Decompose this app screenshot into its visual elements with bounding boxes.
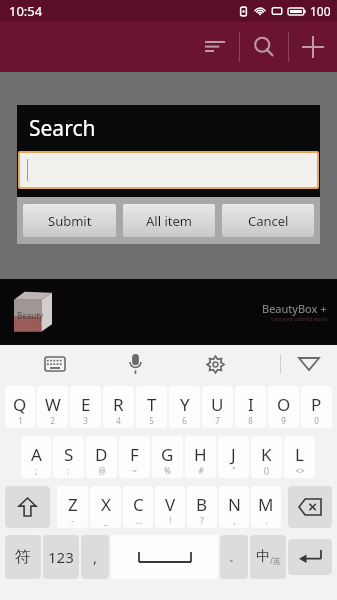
staticText: Search: [29, 114, 96, 143]
staticText: ": [232, 465, 236, 476]
button[interactable]: Enter: [288, 539, 332, 575]
staticText: C: [133, 493, 144, 516]
staticText: turn your colorful world: [271, 316, 327, 323]
button[interactable]: U: [202, 386, 233, 428]
button[interactable]: V: [155, 486, 185, 528]
staticText: 5: [149, 415, 154, 426]
staticText: I: [248, 393, 254, 416]
staticText: U: [211, 393, 224, 416]
button[interactable]: All item: [123, 204, 215, 237]
button[interactable]: T: [136, 386, 167, 428]
staticText: Q: [13, 393, 27, 416]
button[interactable]: S: [53, 436, 84, 478]
button[interactable]: L: [284, 436, 315, 478]
button[interactable]: Search: [240, 22, 288, 72]
staticText: F: [130, 443, 139, 466]
staticText: ?: [200, 515, 204, 526]
button[interactable]: D: [86, 436, 117, 478]
button[interactable]: 符: [5, 535, 41, 579]
button[interactable]: X: [90, 486, 121, 528]
staticText: 3: [83, 415, 88, 426]
staticText: 10:54: [9, 2, 43, 20]
button[interactable]: Z: [57, 486, 88, 528]
button[interactable]: ,: [81, 535, 109, 579]
button[interactable]: M: [251, 486, 281, 528]
button[interactable]: Keyboard layout: [38, 347, 72, 381]
button[interactable]: P: [301, 386, 332, 428]
staticText: 1: [18, 415, 23, 426]
staticText: 4: [116, 415, 121, 426]
button[interactable]: J: [218, 436, 249, 478]
staticText: ,: [93, 547, 98, 567]
button[interactable]: A: [21, 436, 51, 478]
button[interactable]: I: [235, 386, 266, 428]
button[interactable]: Space: [111, 535, 218, 579]
button[interactable]: Sort: [191, 22, 239, 72]
staticText: 。: [229, 550, 240, 564]
staticText: 9: [281, 415, 286, 426]
staticText: ~: [132, 465, 137, 476]
button[interactable]: F: [119, 436, 150, 478]
staticText: W: [45, 393, 61, 416]
staticText: N: [228, 493, 241, 516]
staticText: K: [261, 443, 272, 466]
staticText: ;: [35, 465, 38, 476]
button[interactable]: E: [70, 386, 101, 428]
button[interactable]: Voice input: [118, 347, 152, 381]
button[interactable]: Cancel: [222, 204, 314, 237]
button[interactable]: Submit: [23, 204, 116, 237]
staticText: O: [277, 393, 291, 416]
staticText: P: [311, 393, 322, 416]
button[interactable]: G: [152, 436, 183, 478]
staticText: (): [264, 465, 269, 476]
button[interactable]: Shift: [5, 486, 50, 528]
button[interactable]: Q: [5, 386, 35, 428]
button[interactable]: 。: [220, 535, 248, 579]
staticText: 0: [314, 415, 319, 426]
button[interactable]: N: [219, 486, 249, 528]
staticText: H: [194, 443, 207, 466]
staticText: Beauty: [17, 310, 44, 321]
staticText: Z: [68, 493, 78, 516]
staticText: 6: [182, 415, 187, 426]
staticText: X: [101, 493, 111, 516]
button[interactable]: K: [251, 436, 282, 478]
staticText: :: [67, 465, 70, 476]
staticText: BeautyBox +: [262, 301, 327, 316]
staticText: %: [164, 465, 171, 476]
staticText: V: [165, 493, 176, 516]
button[interactable]: Y: [169, 386, 200, 428]
button[interactable]: 中: [250, 535, 286, 579]
button[interactable]: Delete: [288, 486, 332, 528]
staticText: 符: [15, 547, 31, 567]
staticText: E: [81, 393, 91, 416]
button[interactable]: H: [185, 436, 216, 478]
staticText: _: [104, 515, 108, 526]
staticText: /英: [270, 555, 281, 566]
button[interactable]: W: [37, 386, 68, 428]
staticText: ...: [135, 515, 142, 526]
button[interactable]: Hide keyboard: [281, 347, 337, 381]
button[interactable]: B: [187, 486, 217, 528]
button[interactable]: 123: [43, 535, 79, 579]
staticText: A: [31, 443, 42, 466]
staticText: 8: [248, 415, 253, 426]
staticText: !: [169, 515, 172, 526]
button[interactable]: Settings: [198, 347, 232, 381]
staticText: 2: [50, 415, 55, 426]
staticText: S: [64, 443, 74, 466]
staticText: @: [98, 465, 106, 476]
staticText: All item: [146, 212, 192, 230]
staticText: 中: [256, 548, 270, 566]
button[interactable]: R: [103, 386, 134, 428]
staticText: 7: [215, 415, 220, 426]
button[interactable]: C: [123, 486, 153, 528]
button[interactable]: Add: [289, 22, 337, 72]
staticText: Y: [180, 393, 190, 416]
button[interactable]: [20, 153, 317, 187]
staticText: J: [231, 443, 236, 466]
button[interactable]: O: [268, 386, 299, 428]
staticText: #: [198, 465, 204, 476]
staticText: R: [113, 393, 124, 416]
staticText: .: [265, 515, 268, 526]
